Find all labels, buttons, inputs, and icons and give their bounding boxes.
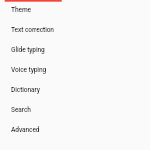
staticText: Advanced — [11, 126, 40, 134]
other: Loading — [0, 0, 150, 3]
staticText: Theme — [11, 6, 31, 14]
button[interactable]: Voice typing — [0, 60, 150, 80]
button[interactable]: Dictionary — [0, 80, 150, 100]
staticText: Glide typing — [11, 46, 45, 54]
staticText: Dictionary — [11, 86, 40, 94]
button[interactable]: Search — [0, 100, 150, 120]
button[interactable]: Glide typing — [0, 40, 150, 60]
staticText: Search — [11, 106, 31, 114]
staticText: Text correction — [11, 26, 54, 34]
button[interactable]: Advanced — [0, 120, 150, 140]
button[interactable]: Text correction — [0, 20, 150, 40]
staticText: Voice typing — [11, 66, 47, 74]
button[interactable]: Theme — [0, 0, 150, 20]
